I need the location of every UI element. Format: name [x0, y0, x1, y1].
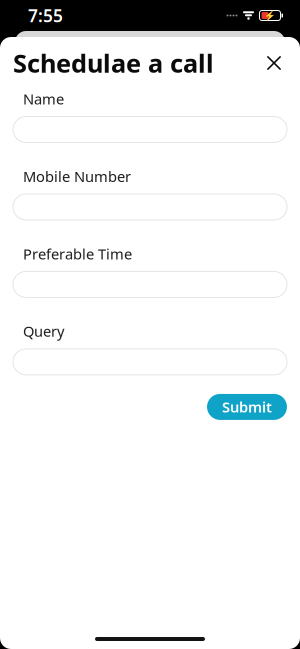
button[interactable]: Query	[13, 349, 287, 375]
staticText: Mobile Number	[23, 166, 131, 186]
button[interactable]: Close	[257, 46, 291, 80]
button[interactable]: Preferable Time	[13, 271, 287, 297]
button[interactable]: Name	[13, 116, 287, 142]
staticText: Schedulae a call	[13, 46, 214, 80]
staticText: Preferable Time	[23, 244, 132, 263]
staticText: 7:55	[28, 4, 63, 27]
staticText: ⚡	[264, 10, 276, 21]
button[interactable]: Mobile Number	[13, 194, 287, 220]
staticText: Submit	[222, 397, 272, 417]
staticText: Query	[23, 321, 64, 341]
staticText: Name	[23, 89, 64, 108]
button[interactable]: Submit	[207, 394, 287, 420]
